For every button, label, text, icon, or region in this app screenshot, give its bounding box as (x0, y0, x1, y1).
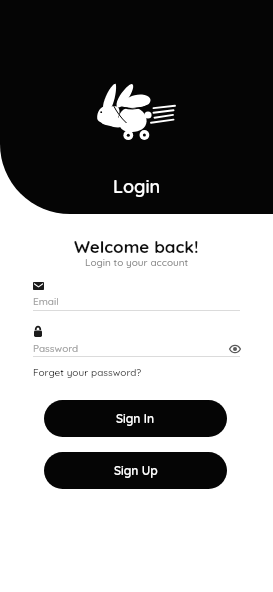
staticText: Password (33, 342, 79, 355)
staticText: Login to your account (85, 256, 189, 269)
staticText: Sign Up (114, 463, 158, 478)
button[interactable]: Email (33, 281, 240, 311)
button[interactable]: Sign Up (44, 452, 227, 489)
button[interactable]: Forget your password? (33, 366, 142, 379)
staticText: Sign In (116, 411, 155, 426)
button[interactable]: Sign In (44, 400, 227, 437)
staticText: Login (113, 175, 161, 198)
staticText: Welcome back! (74, 236, 199, 257)
staticText: Email (33, 295, 59, 308)
button[interactable]: Password (33, 325, 240, 357)
button[interactable]: Show password (227, 341, 243, 357)
